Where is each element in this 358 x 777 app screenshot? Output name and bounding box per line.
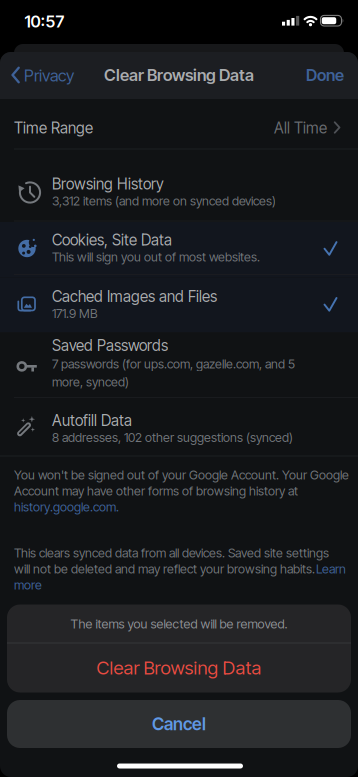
staticText: You won't be signed out of your Google A… [14, 467, 349, 483]
staticText: This clears synced data from all devices… [14, 545, 329, 561]
button[interactable]: Cached Images and Files [0, 277, 358, 332]
button[interactable]: Back [4, 53, 84, 97]
button[interactable]: Cancel [7, 700, 351, 748]
button[interactable]: history.google.com. [14, 499, 354, 515]
button[interactable]: Learn [316, 561, 350, 577]
staticText: Cookies, Site Data [52, 231, 172, 249]
button[interactable]: Done [274, 52, 344, 98]
staticText: Saved Passwords [52, 336, 168, 355]
button[interactable]: more [14, 577, 354, 593]
staticText: Privacy [24, 66, 74, 85]
staticText: Clear Browsing Data [104, 65, 254, 85]
staticText: Time Range [14, 119, 93, 137]
button[interactable]: Time Range [0, 99, 358, 149]
button[interactable]: Autofill Data [0, 398, 358, 456]
staticText: Account may have other forms of browsing… [14, 483, 298, 499]
staticText: will not be deleted and may reflect your… [14, 561, 315, 577]
staticText: 3,312 items (and more on synced devices) [52, 193, 276, 209]
staticText: All Time [274, 119, 327, 137]
staticText: Done [306, 65, 344, 85]
staticText: more, synced) [52, 374, 129, 389]
button[interactable]: Saved Passwords [0, 332, 358, 397]
staticText: 8 addresses, 102 other suggestions (sync… [52, 430, 293, 445]
staticText: 7 passwords (for ups.com, gazelle.com, a… [52, 356, 295, 371]
staticText: 171.9 MB [52, 306, 98, 321]
staticText: 10:57 [24, 12, 64, 31]
staticText: Learn [316, 561, 346, 577]
staticText: more [14, 577, 42, 593]
staticText: Cancel [152, 713, 206, 734]
staticText: The items you selected will be removed. [70, 616, 287, 632]
button[interactable]: Clear Browsing Data [7, 643, 351, 692]
staticText: This will sign you out of most websites. [52, 249, 260, 265]
staticText: Cached Images and Files [52, 287, 217, 306]
staticText: Clear Browsing Data [96, 656, 261, 679]
button[interactable]: Cookies, Site Data [0, 222, 358, 277]
staticText: Browsing History [52, 175, 164, 193]
staticText: history.google.com. [14, 499, 119, 515]
button[interactable]: Browsing History [0, 164, 358, 219]
staticText: Autofill Data [52, 411, 132, 430]
